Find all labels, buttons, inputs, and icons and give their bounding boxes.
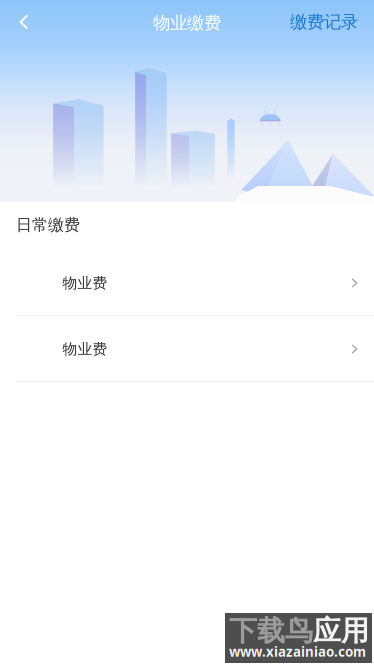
staticText: 应用 <box>313 614 369 648</box>
button[interactable]: Back <box>2 0 46 44</box>
staticText: www.xiazainiao.com <box>229 643 366 660</box>
staticText: 缴费记录 <box>290 11 358 33</box>
staticText: 物业缴费 <box>153 12 221 34</box>
button[interactable]: 物业费 <box>0 250 374 316</box>
staticText: 物业费 <box>62 340 107 358</box>
staticText: 日常缴费 <box>16 215 80 235</box>
button[interactable]: 缴费记录 <box>286 9 362 35</box>
button[interactable]: 物业费 <box>0 316 374 382</box>
staticText: 下载鸟 <box>229 614 313 648</box>
staticText: 物业费 <box>62 274 107 292</box>
